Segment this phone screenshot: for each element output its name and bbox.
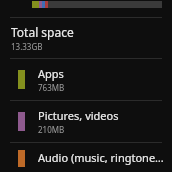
- staticText: Pictures, videos: [38, 108, 119, 123]
- staticText: 210MB: [38, 124, 65, 135]
- staticText: Apps: [38, 66, 64, 81]
- staticText: Audio (music, ringtones, podc..: [38, 150, 164, 165]
- staticText: Total space: [11, 24, 74, 40]
- staticText: 13.33GB: [11, 41, 43, 52]
- button[interactable]: Pictures, videos: [0, 103, 172, 140]
- other: Storage usage: [32, 1, 162, 8]
- button[interactable]: Total space: [0, 18, 172, 58]
- staticText: 763MB: [38, 82, 65, 93]
- button[interactable]: Apps: [0, 61, 172, 98]
- button[interactable]: Audio (music, ringtones, podc..: [0, 145, 172, 172]
